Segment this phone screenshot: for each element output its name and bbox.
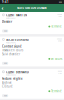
staticText: Facture réglée	[2, 77, 23, 80]
staticText: Clôturé	[2, 85, 13, 88]
staticText: 21/04	[58, 72, 62, 74]
staticText: Ref. 2024-0042	[6, 42, 16, 44]
staticText: Archivé	[2, 81, 12, 84]
staticText: ▮▮▮	[59, 1, 62, 3]
button[interactable]: SOCIETE DURAND	[0, 37, 64, 66]
staticText: Suivi chantier	[2, 52, 20, 56]
staticText: SOCIETE DURAND	[6, 38, 29, 42]
staticText: Détail	[4, 62, 7, 64]
staticText: Terminé	[51, 25, 62, 28]
staticText: Travaux en cours	[2, 48, 23, 52]
staticText: 9:41	[2, 0, 9, 4]
staticText: CLIENT MARTIN	[6, 13, 27, 17]
staticText: CLIENT BERNARD	[6, 70, 29, 74]
staticText: Ref. 2024-0041	[6, 17, 16, 19]
staticText: Ref. 2024-0043	[6, 74, 16, 76]
button[interactable]: CLIENT MARTIN	[0, 12, 64, 34]
staticText: Dossier	[2, 20, 12, 23]
staticText: 04/04	[58, 40, 62, 42]
button[interactable]: CLIENT BERNARD	[0, 69, 64, 99]
staticText: 1 240 €	[57, 13, 62, 15]
staticText: SUIVI GESTION DOSSIER	[17, 6, 47, 10]
staticText: ‹	[1, 4, 3, 12]
staticText: Terminé	[51, 89, 62, 93]
staticText: Détail	[4, 30, 7, 32]
button[interactable]: Back	[0, 4, 5, 12]
staticText: 860 €	[58, 70, 62, 72]
staticText: 12/03	[58, 15, 62, 17]
staticText: En cours	[51, 57, 62, 61]
staticText: Contrat signé	[2, 45, 22, 48]
staticText: Détail	[4, 95, 7, 97]
